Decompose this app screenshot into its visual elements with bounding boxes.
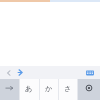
button[interactable]: Keyboard settings — [84, 67, 96, 79]
button[interactable]: Next — [15, 67, 26, 78]
button[interactable]: Key — [39, 79, 58, 100]
button[interactable]: Previous — [3, 67, 14, 78]
button[interactable]: Key — [58, 79, 77, 100]
staticText: か — [45, 84, 53, 93]
button[interactable]: Key — [0, 79, 19, 100]
button[interactable]: Key — [77, 79, 100, 100]
button[interactable]: Key — [19, 79, 39, 100]
staticText: あ — [25, 84, 33, 93]
staticText: さ — [64, 84, 72, 93]
